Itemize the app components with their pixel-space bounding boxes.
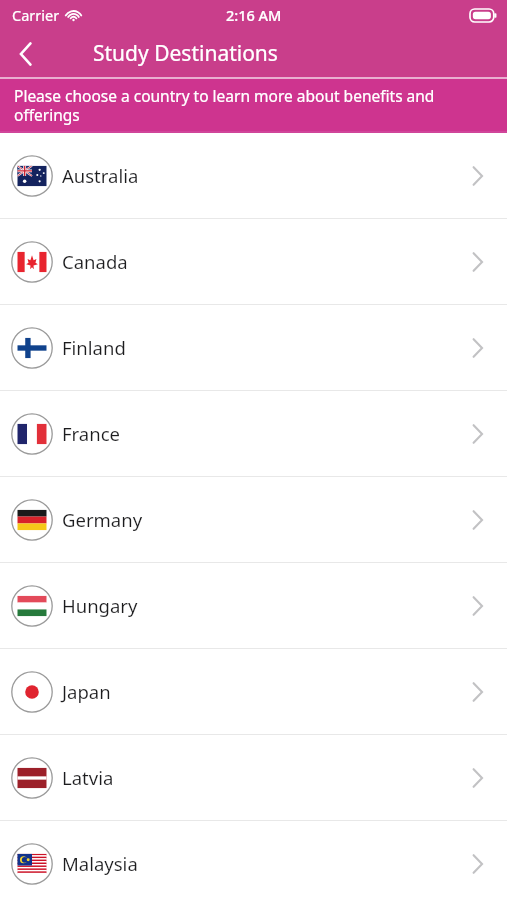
staticText: Finland — [62, 335, 126, 360]
staticText: 2:16 AM — [226, 5, 282, 25]
button[interactable]: Japan — [0, 649, 507, 734]
button[interactable]: Malaysia — [0, 821, 507, 900]
button[interactable]: Back — [0, 30, 52, 77]
button[interactable]: Australia — [0, 133, 507, 218]
staticText: Canada — [62, 249, 128, 274]
staticText: France — [62, 421, 120, 446]
button[interactable]: Hungary — [0, 563, 507, 648]
staticText: Please choose a country to learn more ab… — [14, 85, 493, 125]
staticText: Latvia — [62, 765, 114, 790]
staticText: Hungary — [62, 593, 138, 618]
staticText: Study Destinations — [93, 39, 278, 68]
button[interactable]: France — [0, 391, 507, 476]
button[interactable]: Germany — [0, 477, 507, 562]
staticText: Australia — [62, 163, 139, 188]
staticText: Malaysia — [62, 851, 138, 876]
button[interactable]: Canada — [0, 219, 507, 304]
button[interactable]: Finland — [0, 305, 507, 390]
staticText: Carrier — [12, 5, 60, 25]
staticText: Japan — [62, 679, 111, 704]
staticText: Germany — [62, 507, 143, 532]
button[interactable]: Latvia — [0, 735, 507, 820]
